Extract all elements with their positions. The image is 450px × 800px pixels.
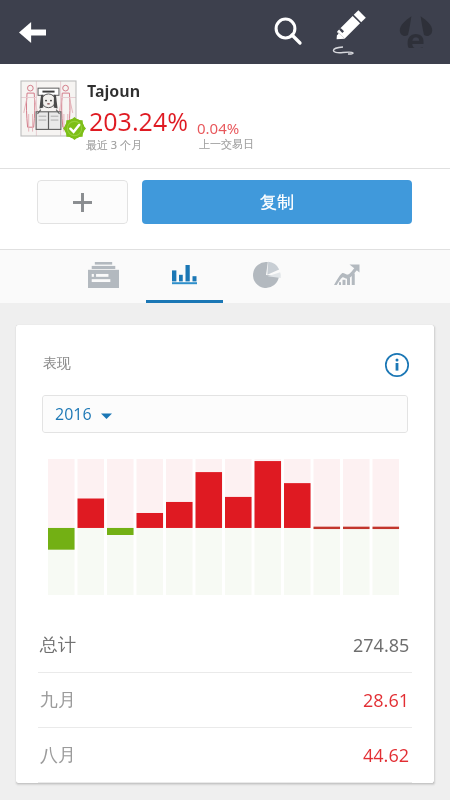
staticText: 最近 3 个月: [86, 137, 143, 152]
button[interactable]: Portfolio: [63, 250, 144, 303]
staticText: Tajoun: [87, 80, 141, 102]
staticText: 274.85: [353, 633, 410, 658]
button[interactable]: 八月: [40, 728, 410, 782]
button[interactable]: Trend: [306, 250, 387, 303]
button[interactable]: Info: [383, 351, 411, 379]
staticText: 复制: [260, 192, 294, 213]
staticText: 总计: [40, 634, 76, 657]
button[interactable]: Back: [5, 5, 59, 59]
staticText: 八月: [40, 744, 76, 767]
button[interactable]: Chart: [144, 250, 225, 303]
button[interactable]: Edit: [323, 4, 379, 60]
staticText: 44.62: [363, 743, 410, 768]
button[interactable]: Add: [37, 180, 128, 224]
button[interactable]: 九月: [40, 673, 410, 727]
button[interactable]: Allocation: [225, 250, 306, 303]
button[interactable]: eToro: [388, 2, 444, 58]
button[interactable]: Search: [259, 4, 315, 60]
button[interactable]: 总计: [40, 618, 410, 672]
staticText: 2016: [55, 403, 92, 425]
button[interactable]: 2016: [42, 395, 408, 433]
staticText: 0.04%: [197, 118, 240, 138]
staticText: 28.61: [363, 688, 410, 713]
button[interactable]: 复制: [142, 180, 412, 224]
staticText: 203.24%: [89, 104, 188, 138]
staticText: e: [406, 18, 426, 48]
staticText: 九月: [40, 689, 76, 712]
staticText: 上一交易日: [199, 137, 254, 151]
staticText: 表现: [43, 355, 71, 373]
